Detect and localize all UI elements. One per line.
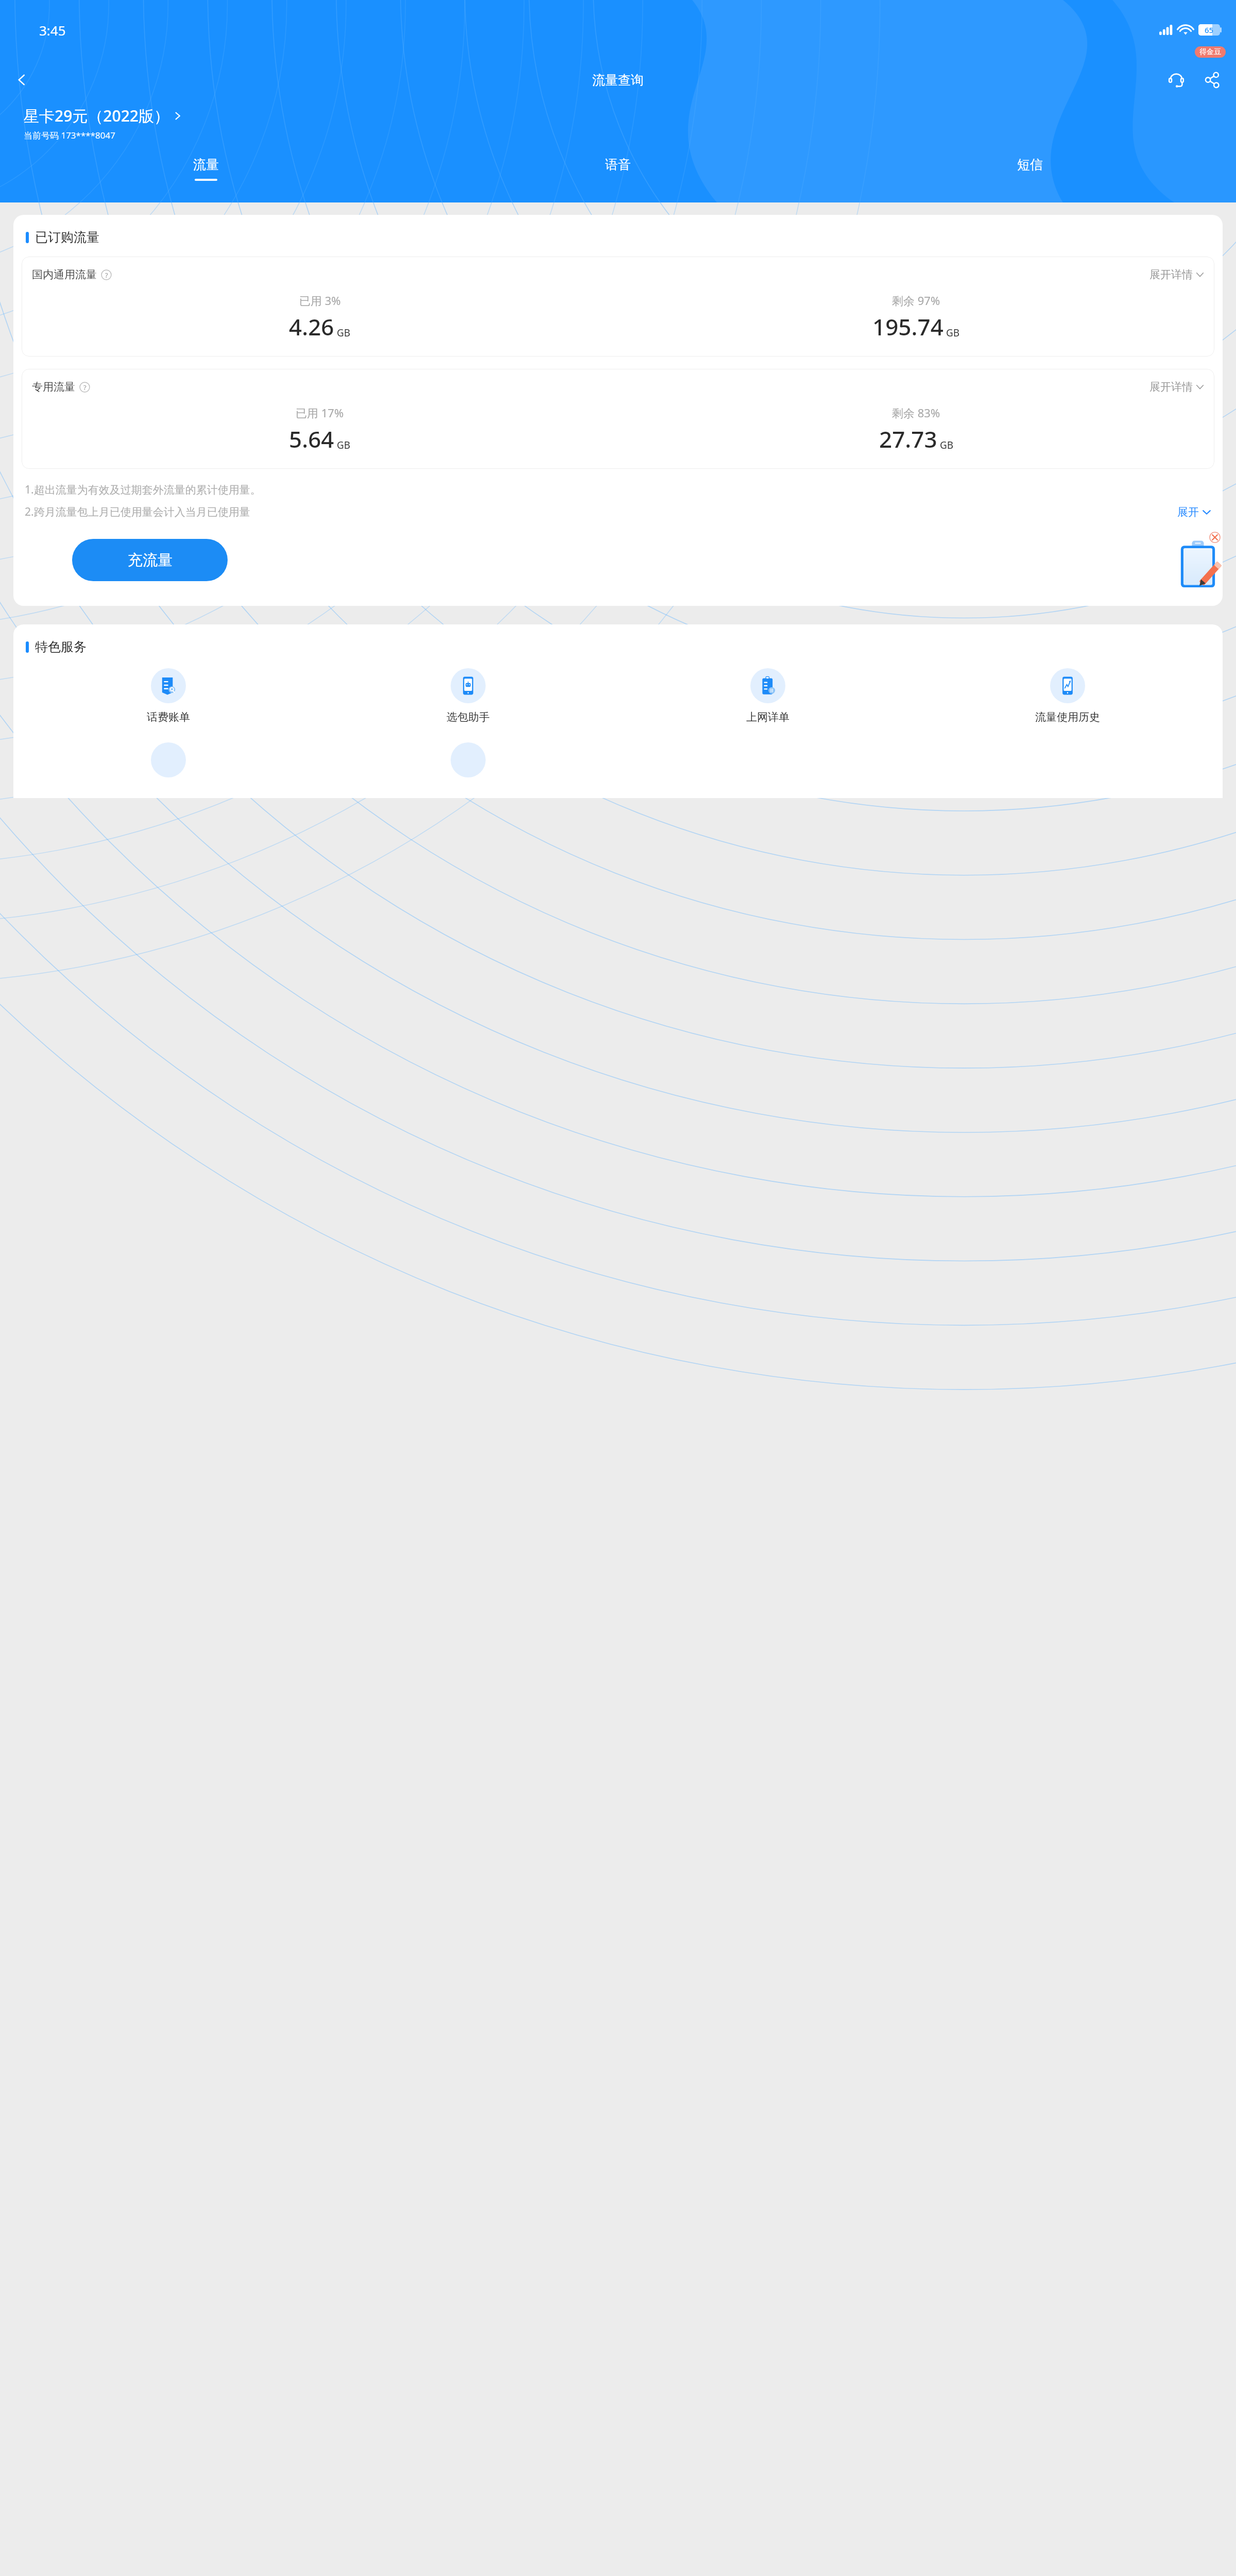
staticText: 展开详情 xyxy=(1149,380,1193,394)
staticText: 国内通用流量 xyxy=(32,268,97,281)
staticText: GB xyxy=(940,438,954,452)
staticText: 得金豆 xyxy=(1199,47,1221,57)
button[interactable]: 展开 xyxy=(1177,505,1211,519)
button[interactable]: 得金豆 xyxy=(1195,46,1226,58)
button[interactable]: Customer service xyxy=(1162,65,1191,94)
staticText: ? xyxy=(83,383,87,392)
staticText: GB xyxy=(946,326,960,340)
staticText: 充流量 xyxy=(128,551,173,570)
staticText: ? xyxy=(105,270,108,280)
staticText: 星卡29元（2022版） xyxy=(24,105,169,126)
button[interactable]: 流量使用历史 xyxy=(918,668,1217,724)
staticText: GB xyxy=(337,438,351,452)
staticText: 1.超出流量为有效及过期套外流量的累计使用量。 xyxy=(25,482,261,497)
staticText: 流量查询 xyxy=(592,72,644,88)
staticText: 已订购流量 xyxy=(35,229,99,245)
button[interactable]: Feedback xyxy=(1179,540,1216,588)
button[interactable] xyxy=(19,742,318,777)
staticText: 剩余 83% xyxy=(892,405,940,420)
button[interactable]: 充流量 xyxy=(72,539,228,581)
staticText: 195.74 xyxy=(872,311,943,342)
staticText: 65 xyxy=(1205,25,1214,35)
button[interactable]: 语音 xyxy=(412,157,824,181)
staticText: 当前号码 173****8047 xyxy=(24,129,115,141)
staticText: 已用 17% xyxy=(296,405,344,420)
button[interactable]: 话费账单 xyxy=(19,668,318,724)
button[interactable]: 流量 xyxy=(0,157,412,181)
staticText: 选包助手 xyxy=(447,710,490,724)
button[interactable] xyxy=(318,742,618,777)
staticText: 语音 xyxy=(605,157,631,173)
staticText: 已用 3% xyxy=(299,293,341,308)
button[interactable]: 星卡29元（2022版） xyxy=(24,105,182,126)
staticText: 特色服务 xyxy=(35,639,87,655)
staticText: 27.73 xyxy=(879,423,937,454)
staticText: 话费账单 xyxy=(147,710,190,724)
button[interactable]: 展开详情 xyxy=(1149,268,1204,281)
staticText: 剩余 97% xyxy=(892,293,940,308)
button[interactable]: Info xyxy=(79,382,90,393)
button[interactable]: 上网详单 xyxy=(618,668,918,724)
staticText: 专用流量 xyxy=(32,380,75,394)
staticText: 4.26 xyxy=(289,311,334,342)
staticText: 展开详情 xyxy=(1149,268,1193,281)
staticText: 流量使用历史 xyxy=(1035,710,1100,724)
button[interactable]: Share xyxy=(1198,65,1227,94)
button[interactable]: 展开详情 xyxy=(1149,380,1204,394)
button[interactable]: 短信 xyxy=(824,157,1236,181)
staticText: 展开 xyxy=(1177,505,1199,519)
button[interactable]: Close feedback xyxy=(1209,532,1221,543)
button[interactable]: Back xyxy=(7,65,36,94)
button[interactable]: Info xyxy=(101,269,112,280)
staticText: 2.跨月流量包上月已使用量会计入当月已使用量 xyxy=(25,504,250,519)
staticText: 3:45 xyxy=(39,21,66,39)
staticText: 上网详单 xyxy=(746,710,789,724)
staticText: 短信 xyxy=(1017,157,1043,173)
staticText: 流量 xyxy=(193,157,219,173)
staticText: GB xyxy=(337,326,351,340)
staticText: 5.64 xyxy=(289,423,334,454)
button[interactable]: 选包助手 xyxy=(318,668,618,724)
